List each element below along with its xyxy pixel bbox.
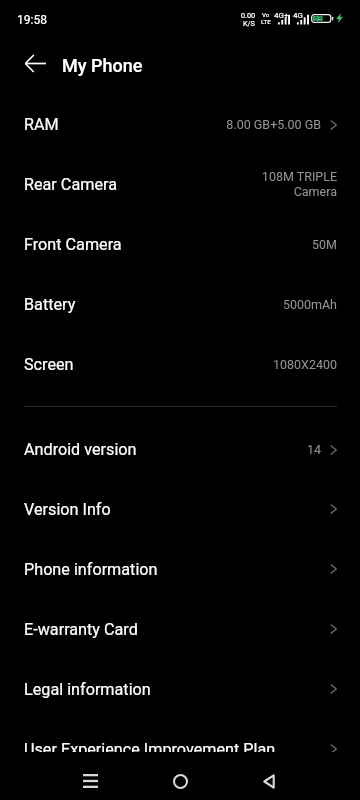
staticText: My Phone (62, 55, 143, 76)
staticText: 5000mAh (282, 297, 337, 312)
staticText: LTE (261, 18, 271, 25)
staticText: E-warranty Card (24, 620, 138, 639)
button[interactable]: Back (16, 44, 54, 82)
button[interactable]: Recent apps (60, 757, 120, 800)
staticText: Legal information (24, 680, 151, 699)
staticText: 108M TRIPLE Camera (261, 169, 337, 199)
staticText: 1080X2400 (272, 357, 337, 372)
staticText: Screen (24, 355, 74, 374)
button[interactable]: Android version (0, 419, 360, 479)
staticText: Battery (24, 295, 76, 314)
staticText: User Experience Improvement Plan (24, 740, 276, 759)
staticText: Vo (262, 11, 270, 18)
staticText: 14 (306, 442, 321, 457)
button[interactable]: Legal information (0, 659, 360, 719)
staticText: 50M (312, 237, 337, 252)
staticText: Front Camera (24, 235, 122, 254)
staticText: 4G (293, 11, 303, 20)
staticText: Android version (24, 440, 137, 459)
staticText: 69 (314, 15, 323, 23)
staticText: Phone information (24, 560, 158, 579)
button[interactable]: Back (239, 757, 299, 800)
staticText: 0.00 (241, 11, 256, 19)
button[interactable]: User Experience Improvement Plan (0, 719, 360, 779)
staticText: Rear Camera (24, 175, 117, 194)
button[interactable]: Screen (0, 334, 360, 394)
button[interactable]: Version Info (0, 479, 360, 539)
button[interactable]: RAM (0, 94, 360, 154)
staticText: Version Info (24, 500, 111, 519)
button[interactable]: Home (150, 757, 210, 800)
staticText: 8.00 GB+5.00 GB (226, 117, 321, 132)
button[interactable]: Battery (0, 274, 360, 334)
button[interactable]: Rear Camera (0, 154, 360, 214)
button[interactable]: Front Camera (0, 214, 360, 274)
staticText: 4G+ (274, 11, 289, 20)
staticText: 19:58 (17, 13, 47, 27)
button[interactable]: E-warranty Card (0, 599, 360, 659)
staticText: K/S (243, 19, 255, 27)
button[interactable]: Phone information (0, 539, 360, 599)
staticText: RAM (24, 115, 59, 134)
